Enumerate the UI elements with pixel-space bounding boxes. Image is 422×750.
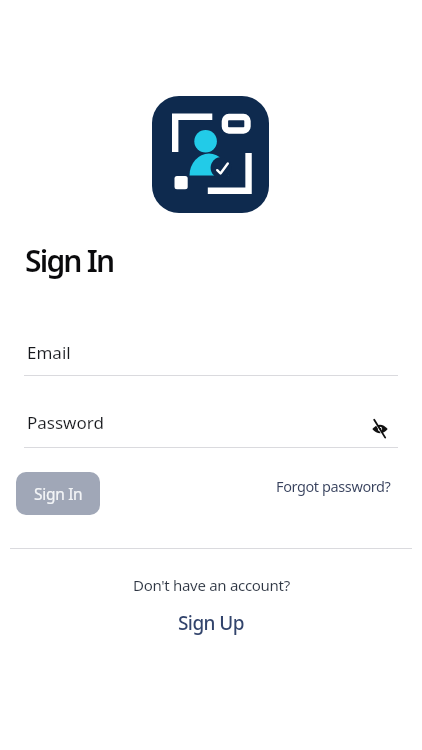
staticText: Password — [27, 411, 104, 434]
staticText: Sign Up — [178, 610, 244, 636]
staticText: Sign In — [34, 483, 83, 504]
button[interactable]: Email — [24, 332, 398, 376]
button[interactable]: Forgot password? — [276, 476, 391, 496]
button[interactable] — [366, 414, 394, 442]
staticText: Sign In — [25, 240, 114, 281]
button[interactable]: Sign Up — [178, 610, 244, 636]
button[interactable]: Sign In — [16, 472, 100, 515]
staticText: Forgot password? — [276, 476, 391, 496]
button[interactable]: Password — [24, 404, 398, 448]
staticText: Email — [27, 341, 71, 364]
staticText: Don't have an account? — [133, 575, 290, 595]
